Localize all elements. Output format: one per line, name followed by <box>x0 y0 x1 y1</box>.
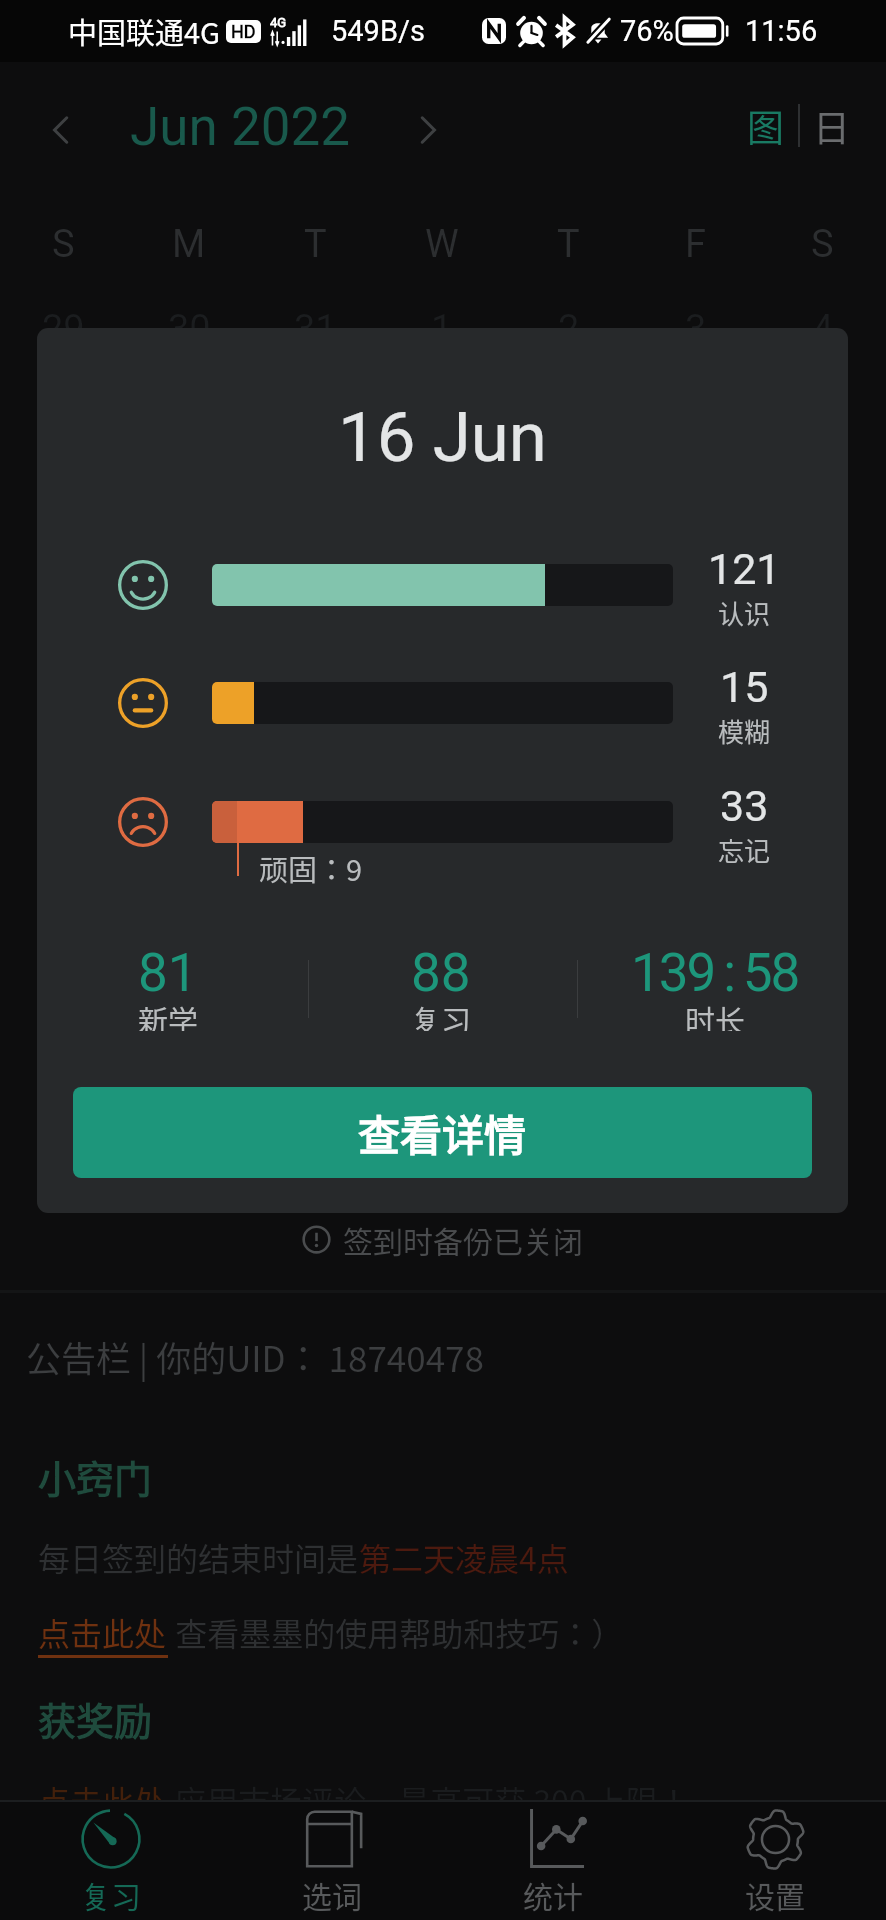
button[interactable]: 选词 <box>221 1802 442 1920</box>
staticText: 549B/s <box>331 14 425 48</box>
staticText: F <box>685 222 707 267</box>
staticText: 30 <box>168 307 211 352</box>
staticText: 2 <box>558 307 580 352</box>
staticText: 时长 <box>685 997 745 1031</box>
staticText: 33 <box>720 781 769 831</box>
staticText: 模糊 <box>718 712 771 750</box>
staticText: HD <box>231 21 256 42</box>
staticText: Jun 2022 <box>130 96 351 158</box>
button[interactable]: 日 <box>803 98 859 154</box>
staticText: 76% <box>620 14 674 48</box>
button[interactable]: 小窍门 <box>38 1449 153 1504</box>
staticText: 29 <box>42 307 85 352</box>
button[interactable]: 设置 <box>664 1802 886 1920</box>
staticText: 点击此处 <box>38 1609 167 1655</box>
staticText: 应用市场评论，最高可获 300 上限！ <box>167 1777 690 1823</box>
staticText: S <box>52 222 75 267</box>
staticText: 顽固：9 <box>259 847 363 889</box>
staticText: 新学 <box>138 997 198 1031</box>
staticText: 16 Jun <box>37 397 848 478</box>
staticText: 认识 <box>718 594 771 632</box>
staticText: T <box>557 222 580 267</box>
button[interactable]: 获奖励 <box>38 1691 153 1746</box>
staticText: 88 <box>411 942 471 1004</box>
staticText: 3 <box>685 307 707 352</box>
staticText: 公告栏 | 你的UID： 18740478 <box>26 1331 484 1382</box>
button[interactable]: 点击此处 <box>38 1609 168 1658</box>
button[interactable]: 统计 <box>442 1802 664 1920</box>
staticText: 139 : 58 <box>631 942 799 1004</box>
staticText: 每日签到的结束时间是 <box>38 1534 359 1580</box>
staticText: 1 <box>431 307 453 352</box>
staticText: 第二天凌晨4点 <box>359 1534 569 1580</box>
staticText: 121 <box>708 544 781 594</box>
staticText: 忘记 <box>718 831 771 869</box>
staticText: 31 <box>294 307 337 352</box>
staticText: 中国联通4G <box>68 10 221 52</box>
staticText: 统计 <box>523 1873 583 1916</box>
staticText: 11:56 <box>745 14 818 48</box>
button[interactable]: Next month <box>400 102 456 158</box>
staticText: 复习 <box>81 1873 141 1916</box>
staticText: W <box>425 222 459 267</box>
staticText: S <box>811 222 834 267</box>
staticText: 点击此处 <box>38 1777 167 1823</box>
staticText: 复习 <box>411 997 471 1031</box>
staticText: 签到时备份已关闭 <box>343 1218 583 1261</box>
staticText: 选词 <box>302 1873 362 1916</box>
staticText: T <box>304 222 327 267</box>
staticText: 81 <box>138 942 198 1004</box>
staticText: 15 <box>720 662 769 712</box>
button[interactable]: 复习 <box>0 1802 221 1920</box>
staticText: 4 <box>812 307 834 352</box>
staticText: 查看墨墨的使用帮助和技巧：） <box>168 1609 624 1655</box>
staticText: 设置 <box>745 1873 805 1916</box>
button[interactable]: 查看详情 <box>73 1087 812 1178</box>
staticText: M <box>172 222 206 267</box>
button[interactable]: 图 <box>737 98 793 154</box>
staticText: 4G <box>270 15 287 30</box>
staticText: 查看详情 <box>358 1102 527 1163</box>
staticText: 日 <box>813 99 850 153</box>
staticText: 图 <box>747 99 784 153</box>
button[interactable]: Previous month <box>33 102 89 158</box>
